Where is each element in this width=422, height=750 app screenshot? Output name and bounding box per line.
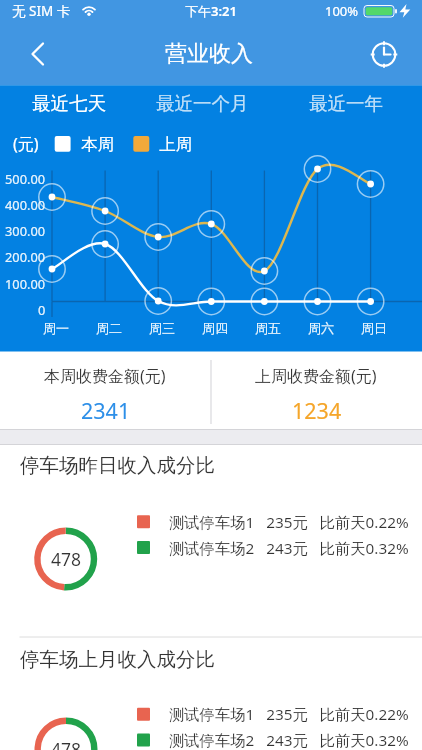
staticText: 478 xyxy=(51,547,82,571)
staticText: 测试停车场2 243元 比前天0.32% xyxy=(169,538,409,559)
staticText: 周三 xyxy=(149,320,175,336)
staticText: 营业收入 xyxy=(165,40,253,68)
button[interactable] xyxy=(16,30,50,78)
staticText: 无 SIM 卡 xyxy=(12,2,71,20)
staticText: 测试停车场2 243元 比前天0.32% xyxy=(169,730,409,750)
staticText: 测试停车场1 235元 比前天0.22% xyxy=(169,512,409,533)
staticText: 400.00 xyxy=(5,196,46,213)
staticText: 下午3:21 xyxy=(185,2,237,20)
staticText: 周六 xyxy=(308,320,334,336)
staticText: 周二 xyxy=(96,320,122,336)
staticText: 停车场上月收入成分比 xyxy=(20,647,215,672)
staticText: 最近一个月 xyxy=(156,92,249,115)
staticText: (元) xyxy=(13,133,39,155)
staticText: 周四 xyxy=(202,320,228,336)
staticText: 停车场昨日收入成分比 xyxy=(20,453,215,478)
staticText: 本周收费金额(元) xyxy=(44,365,166,387)
staticText: 478 xyxy=(51,737,82,750)
staticText: 1234 xyxy=(292,396,342,424)
staticText: 300.00 xyxy=(5,222,46,239)
staticText: 上周 xyxy=(159,134,192,155)
staticText: 周日 xyxy=(361,320,387,336)
button[interactable] xyxy=(290,85,402,121)
staticText: 周一 xyxy=(43,320,69,336)
staticText: 最近一年 xyxy=(309,92,383,115)
button[interactable] xyxy=(142,85,262,121)
staticText: 上周收费金额(元) xyxy=(255,365,377,387)
staticText: 最近七天 xyxy=(32,92,106,115)
staticText: 0 xyxy=(38,301,46,318)
staticText: 100.00 xyxy=(5,275,46,292)
staticText: 200.00 xyxy=(5,248,46,265)
staticText: 测试停车场1 235元 比前天0.22% xyxy=(169,704,409,725)
button[interactable] xyxy=(10,85,126,121)
staticText: 100% xyxy=(325,2,359,20)
staticText: 本周 xyxy=(81,134,114,155)
button[interactable] xyxy=(362,32,406,76)
staticText: 500.00 xyxy=(5,170,46,187)
staticText: 周五 xyxy=(255,320,281,336)
staticText: 2341 xyxy=(81,396,131,424)
